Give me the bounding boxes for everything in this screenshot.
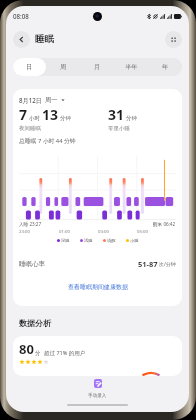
staticText: 13 [42,105,59,124]
button[interactable]: 查看睡眠期间健康数据 [13,283,182,291]
button[interactable]: Back [13,31,30,48]
staticText: 总睡眠 7 小时 44 分钟 [19,137,76,145]
staticText: 年 [162,63,169,71]
staticText: 03:00 [98,228,109,234]
staticText: 月 [94,63,101,71]
staticText: 夜间睡眠 [19,125,41,132]
staticText: 查看睡眠期间健康数据 [68,283,128,291]
button[interactable]: 周 [46,58,80,76]
staticText: 半年 [125,63,138,71]
staticText: 7 [19,105,28,124]
button[interactable]: 月 [80,58,114,76]
button[interactable]: 睡眠心率 [13,259,182,269]
staticText: 80 [19,340,34,358]
staticText: 周 [60,63,67,71]
staticText: 浅睡 [84,238,93,243]
staticText: 08:08 [13,12,29,20]
staticText: 零星小睡 [108,125,130,132]
staticText: 清醒 [107,238,116,243]
staticText: 8月12日 [19,96,42,104]
staticText: 小睡 [130,238,139,243]
staticText: 睡眠心率 [19,260,45,268]
button[interactable]: 日 [13,58,46,76]
staticText: 次/分钟 [159,261,176,268]
staticText: 小时 [29,115,40,122]
button[interactable]: 年 [148,58,182,76]
staticText: 31 [108,105,125,124]
staticText: 醒来 06:42 [153,221,176,227]
staticText: 超过 71% 的用户 [44,349,86,357]
staticText: 51-87 [138,259,158,269]
button[interactable]: 半年 [114,58,148,76]
staticText: 入睡 23:27 [19,221,42,227]
staticText: 分钟 [60,115,71,122]
staticText: 手动录入 [88,393,107,399]
staticText: 23:00 [19,228,30,234]
button[interactable]: 80 [13,336,182,376]
staticText: 深睡 [61,238,70,243]
staticText: 分 [35,350,41,357]
button[interactable]: More options [165,31,182,48]
button[interactable]: 手动录入 [79,379,116,399]
staticText: 01:00 [59,228,70,234]
staticText: 睡眠 [35,33,54,45]
staticText: 日 [26,63,33,71]
staticText: 分钟 [126,115,137,122]
staticText: 数据分析 [19,318,51,328]
button[interactable]: 8月12日 [19,96,65,104]
staticText: 05:00 [137,228,148,234]
staticText: 周一 [45,96,58,104]
